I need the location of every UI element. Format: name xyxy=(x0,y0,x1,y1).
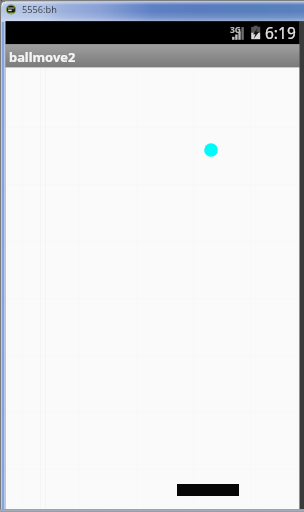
staticText: 3G xyxy=(230,24,242,36)
staticText: 5556:bh xyxy=(22,3,57,16)
button[interactable]: ballmove2 xyxy=(6,44,300,67)
button[interactable]: Game board, tap to move the paddle xyxy=(6,67,300,509)
staticText: ballmove2 xyxy=(9,48,76,66)
other: Signal strength and battery charging xyxy=(230,25,266,43)
button[interactable]: Android emulator window icon xyxy=(6,4,16,15)
staticText: 6:19 xyxy=(265,22,296,43)
